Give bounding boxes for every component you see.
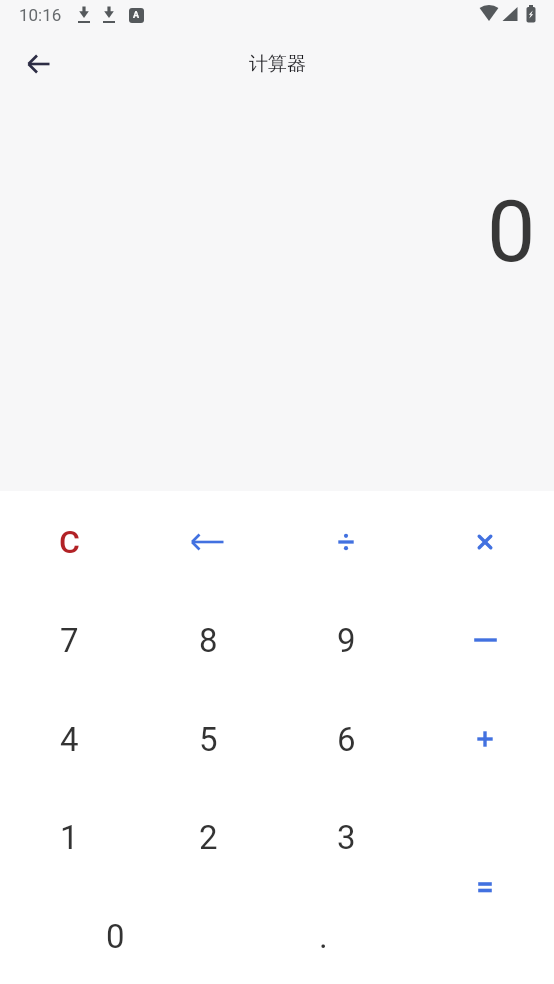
button[interactable]: 4: [9, 691, 129, 787]
button[interactable]: 6: [286, 691, 406, 787]
button[interactable]: 0: [55, 888, 175, 984]
button[interactable]: [286, 494, 406, 590]
staticText: .: [319, 917, 328, 956]
button[interactable]: 1: [9, 789, 129, 885]
button[interactable]: 9: [286, 592, 406, 688]
button[interactable]: 2: [148, 789, 268, 885]
button[interactable]: [425, 494, 545, 590]
button[interactable]: 7: [9, 592, 129, 688]
button[interactable]: .: [263, 888, 383, 984]
staticText: 7: [60, 621, 79, 660]
button[interactable]: [425, 691, 545, 787]
staticText: 2: [199, 818, 218, 857]
button[interactable]: [15, 40, 63, 88]
staticText: 5: [199, 720, 218, 759]
staticText: C: [59, 523, 80, 561]
staticText: 4: [60, 720, 79, 759]
button[interactable]: 8: [148, 592, 268, 688]
staticText: 8: [199, 621, 218, 660]
staticText: 0: [487, 181, 536, 282]
button[interactable]: [425, 797, 545, 977]
staticText: A: [133, 10, 140, 21]
staticText: 0: [106, 917, 125, 956]
staticText: 1: [60, 818, 79, 857]
staticText: 9: [337, 621, 356, 660]
staticText: 3: [337, 818, 356, 857]
staticText: 计算器: [249, 52, 306, 76]
staticText: 6: [337, 720, 356, 759]
staticText: 10:16: [19, 5, 62, 25]
button[interactable]: [148, 494, 268, 590]
button[interactable]: 3: [286, 789, 406, 885]
button[interactable]: [425, 592, 545, 688]
button[interactable]: C: [9, 494, 129, 590]
button[interactable]: 5: [148, 691, 268, 787]
